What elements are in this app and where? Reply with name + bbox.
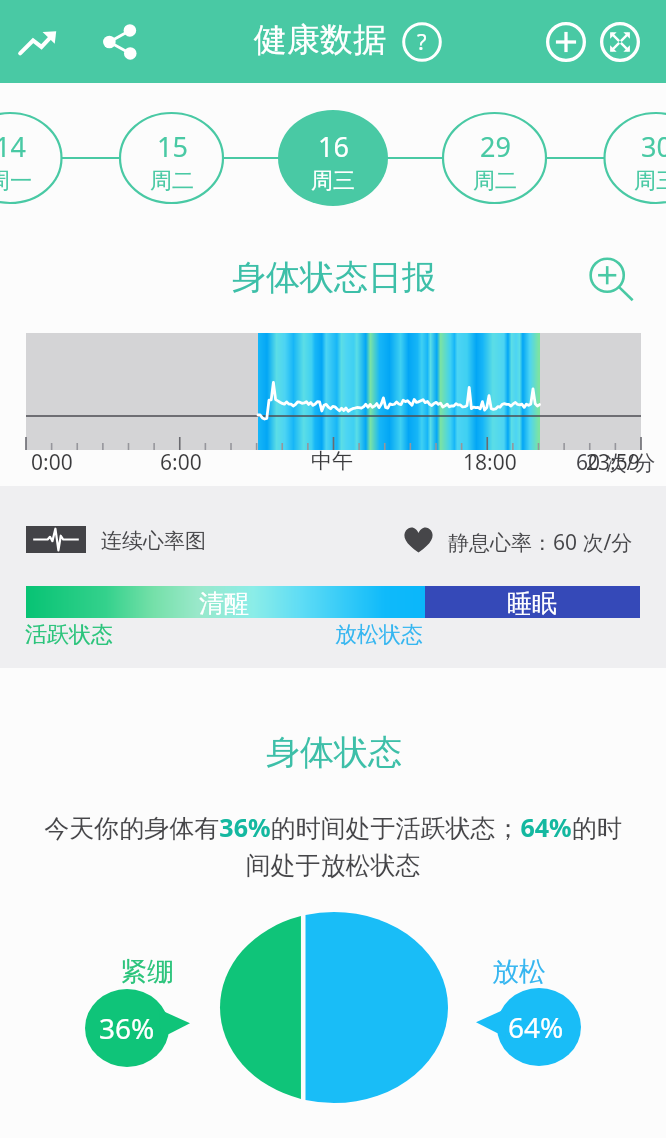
staticText: 健康数据 (254, 19, 386, 61)
staticText: 周二 (150, 167, 194, 195)
staticText: 放松状态 (335, 621, 423, 649)
staticText: 14 (0, 128, 26, 165)
staticText: 36% (99, 1009, 155, 1047)
staticText: 周二 (473, 167, 517, 195)
button[interactable]: Help (396, 16, 448, 68)
staticText: 18:00 (463, 448, 517, 477)
button[interactable]: Add (540, 16, 592, 68)
staticText: 连续心率图 (101, 528, 206, 554)
button[interactable]: 14 (0, 110, 65, 206)
staticText: 64% (508, 1008, 564, 1046)
button[interactable]: 15 (117, 110, 227, 206)
staticText: 放松 (492, 955, 546, 989)
staticText: 周一 (0, 167, 32, 195)
staticText: 23:59 (586, 448, 640, 477)
staticText: 15 (157, 128, 188, 165)
button[interactable]: 29 (440, 110, 550, 206)
staticText: 身体状态 (266, 731, 402, 774)
staticText: 16 (318, 128, 349, 165)
button[interactable]: Share (92, 14, 148, 70)
staticText: 周三 (634, 167, 666, 195)
button[interactable]: 30 (601, 110, 666, 206)
staticText: 清醒 (199, 588, 249, 619)
staticText: 身体状态日报 (232, 256, 436, 299)
button[interactable]: Trend (10, 14, 66, 70)
staticText: 0:00 (31, 448, 73, 477)
staticText: 静息心率：60 次/分 (448, 528, 633, 557)
staticText: 周三 (311, 167, 355, 195)
button[interactable]: Continuous heart rate chart (26, 526, 86, 553)
button[interactable]: 16 (278, 110, 388, 206)
staticText: ? (417, 26, 427, 56)
staticText: 中午 (311, 448, 353, 474)
staticText: 今天你的身体有36%的时间处于活跃状态；64%的时间处于放松状态 (33, 810, 633, 881)
button[interactable]: Collapse (594, 16, 646, 68)
button[interactable]: Zoom in (586, 255, 638, 307)
staticText: 30 (641, 128, 666, 165)
staticText: 60 次/分 (576, 448, 656, 477)
staticText: 6:00 (160, 448, 202, 477)
staticText: 29 (480, 128, 511, 165)
staticText: 活跃状态 (25, 621, 113, 649)
staticText: 紧绷 (120, 955, 174, 989)
staticText: 睡眠 (507, 588, 557, 619)
